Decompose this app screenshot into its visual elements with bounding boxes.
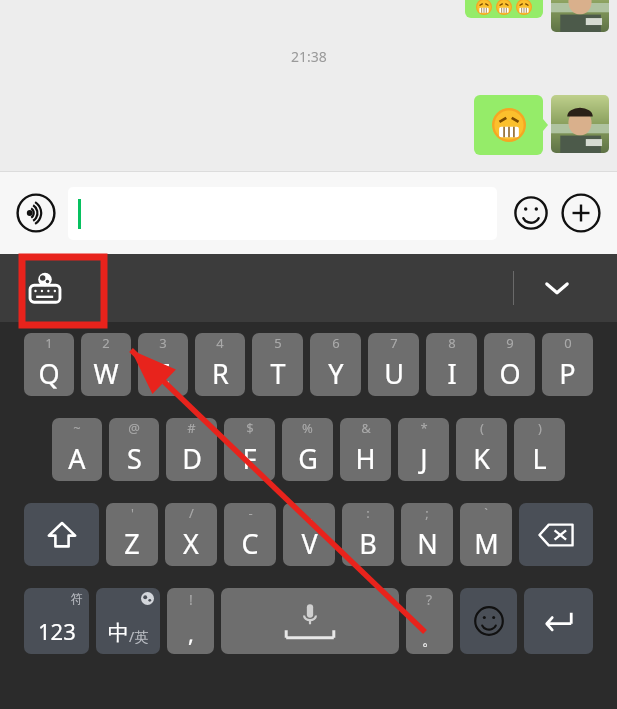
staticText: 1 (45, 334, 53, 352)
staticText: Z (124, 525, 140, 562)
button[interactable]: * (398, 418, 449, 481)
button[interactable]: - (224, 503, 276, 566)
button[interactable]: 0 (542, 333, 593, 396)
staticText: E (155, 355, 171, 392)
staticText: 8 (448, 334, 456, 352)
button[interactable]: ) (514, 418, 565, 481)
button[interactable]: $ (224, 418, 275, 481)
button[interactable]: Emoji (509, 191, 553, 235)
staticText: L (532, 440, 547, 477)
staticText: ) (538, 419, 542, 437)
button[interactable]: & (340, 418, 391, 481)
staticText: 4 (216, 334, 224, 352)
button[interactable]: Emoji (460, 588, 517, 654)
staticText: @ (128, 419, 140, 437)
staticText: ; (425, 504, 429, 522)
button[interactable]: ? (406, 588, 453, 654)
button[interactable]: # (166, 418, 217, 481)
staticText: T (270, 355, 286, 392)
staticText: A (68, 440, 86, 477)
staticText: # (187, 419, 196, 437)
button[interactable]: ! (167, 588, 214, 654)
staticText: /英 (129, 627, 149, 646)
button[interactable]: ' (106, 503, 158, 566)
staticText: J (420, 440, 428, 477)
staticText: 6 (332, 334, 340, 352)
staticText: Y (328, 355, 344, 392)
staticText: R (212, 355, 229, 392)
staticText: X (183, 525, 199, 562)
staticText: , (188, 618, 194, 648)
button[interactable]: Shift (24, 503, 99, 566)
button[interactable]: Voice input (14, 191, 58, 235)
staticText: U (384, 355, 404, 392)
button[interactable]: 1 (24, 333, 74, 396)
staticText: V (301, 525, 318, 562)
button[interactable]: Enter (524, 588, 593, 654)
staticText: 7 (390, 334, 398, 352)
staticText: & (361, 419, 371, 437)
button[interactable]: ` (460, 503, 512, 566)
staticText: K (473, 440, 490, 477)
staticText: C (241, 525, 259, 562)
staticText: F (242, 440, 257, 477)
button[interactable]: More (559, 191, 603, 235)
staticText: : (366, 504, 370, 522)
staticText: H (355, 440, 376, 477)
button[interactable]: Space (221, 588, 399, 654)
button[interactable]: _ (283, 503, 335, 566)
staticText: S (127, 440, 142, 477)
button[interactable]: 中 (96, 588, 160, 654)
staticText: _ (306, 504, 312, 522)
staticText: / (189, 504, 194, 522)
staticText: * (420, 419, 428, 437)
button[interactable]: 6 (310, 333, 361, 396)
button[interactable]: Switch input language (22, 265, 68, 311)
button[interactable]: 8 (426, 333, 477, 396)
button[interactable]: ~ (52, 418, 102, 481)
staticText: ! (189, 590, 193, 609)
staticText: $ (246, 419, 254, 437)
button[interactable]: / (165, 503, 217, 566)
staticText: N (417, 525, 438, 562)
button[interactable]: 7 (368, 333, 419, 396)
staticText: P (559, 355, 576, 392)
staticText: G (298, 440, 318, 477)
staticText: Q (38, 355, 60, 392)
staticText: W (93, 355, 119, 392)
staticText: 0 (564, 334, 572, 352)
staticText: ` (484, 504, 488, 522)
staticText: I (447, 355, 457, 392)
button[interactable]: % (282, 418, 333, 481)
staticText: 9 (506, 334, 514, 352)
staticText: O (499, 355, 521, 392)
staticText: ( (480, 419, 484, 437)
staticText: - (248, 504, 253, 522)
staticText: 中 (108, 620, 129, 646)
staticText: 。 (422, 631, 437, 650)
staticText: ~ (73, 419, 81, 437)
button[interactable]: ( (456, 418, 507, 481)
button[interactable]: ; (401, 503, 453, 566)
staticText: D (182, 440, 202, 477)
button[interactable]: 2 (81, 333, 131, 396)
button[interactable]: Backspace (519, 503, 593, 566)
staticText: 5 (274, 334, 282, 352)
staticText: B (359, 525, 377, 562)
button[interactable]: : (342, 503, 394, 566)
button[interactable] (68, 187, 497, 240)
staticText: 符 (71, 591, 83, 606)
staticText: 3 (159, 334, 167, 352)
staticText: ? (426, 590, 433, 609)
button[interactable]: 4 (195, 333, 245, 396)
button[interactable]: 3 (138, 333, 188, 396)
staticText: ' (131, 504, 134, 522)
staticText: 21:38 (291, 47, 327, 66)
staticText: 123 (38, 616, 76, 646)
button[interactable]: 符 (24, 588, 89, 654)
button[interactable]: @ (109, 418, 159, 481)
button[interactable]: Hide keyboard (535, 266, 579, 310)
button[interactable]: 5 (252, 333, 303, 396)
staticText: M (474, 525, 499, 562)
button[interactable]: 9 (484, 333, 535, 396)
